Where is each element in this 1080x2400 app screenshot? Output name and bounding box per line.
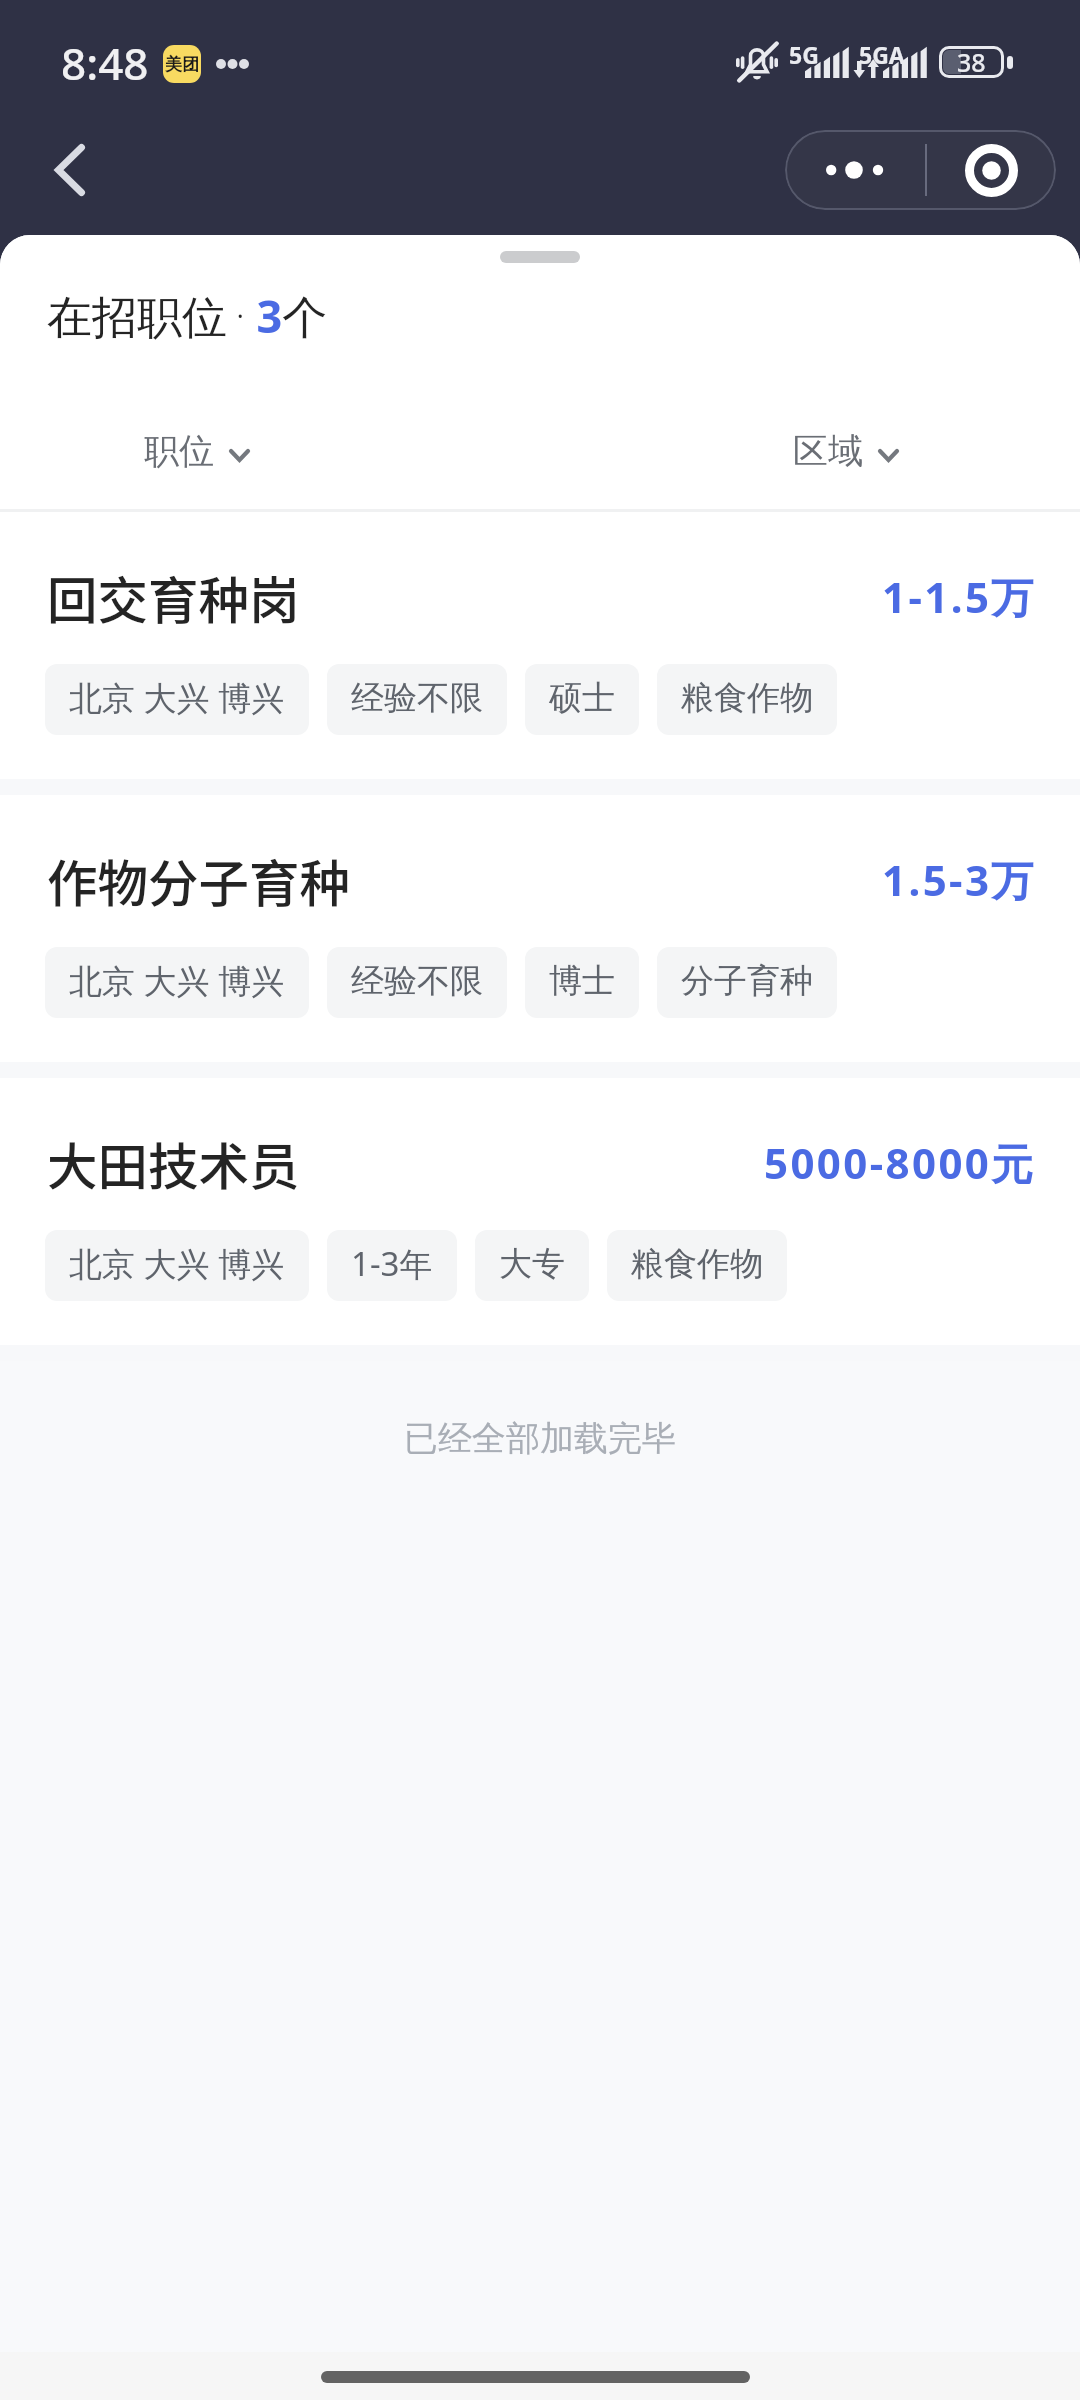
staticText: 分子育种 [681, 960, 813, 1002]
staticText: 硕士 [549, 677, 615, 719]
button[interactable]: 回交育种岗 [0, 512, 1080, 779]
button[interactable]: Back [30, 130, 110, 210]
staticText: 5G [789, 39, 819, 70]
staticText: 北京 大兴 博兴 [69, 958, 285, 1003]
staticText: 5GA [859, 39, 905, 70]
button[interactable]: 大田技术员 [0, 1078, 1080, 1345]
staticText: 1-3年 [351, 1241, 433, 1286]
staticText: 38 [957, 45, 986, 77]
staticText: 区域 [793, 429, 863, 473]
staticText: 回交育种岗 [47, 560, 300, 633]
button[interactable]: 职位 [142, 427, 252, 475]
staticText: 博士 [549, 960, 615, 1002]
button[interactable]: 区域 [791, 427, 901, 475]
staticText: 北京 大兴 博兴 [69, 675, 285, 720]
staticText: 大专 [499, 1243, 565, 1285]
staticText: 北京 大兴 博兴 [69, 1241, 285, 1286]
staticText: 1-1.5万 [882, 568, 1036, 625]
staticText: 经验不限 [351, 677, 483, 719]
staticText: 已经全部加载完毕 [404, 1417, 676, 1460]
button[interactable]: Close mini program [927, 130, 1056, 210]
staticText: 美团 [165, 54, 199, 75]
staticText: 经验不限 [351, 960, 483, 1002]
staticText: 大田技术员 [47, 1126, 300, 1199]
staticText: 粮食作物 [631, 1243, 763, 1285]
button[interactable]: More options [785, 130, 925, 210]
button[interactable]: 作物分子育种 [0, 795, 1080, 1062]
staticText: 1.5-3万 [882, 851, 1036, 908]
staticText: 5000-8000元 [764, 1134, 1036, 1191]
staticText: 作物分子育种 [47, 843, 350, 916]
staticText: 职位 [144, 429, 214, 473]
staticText: 粮食作物 [681, 677, 813, 719]
staticText: 8:48 [61, 33, 149, 93]
staticText: 在招职位 · 3个 [47, 285, 328, 341]
